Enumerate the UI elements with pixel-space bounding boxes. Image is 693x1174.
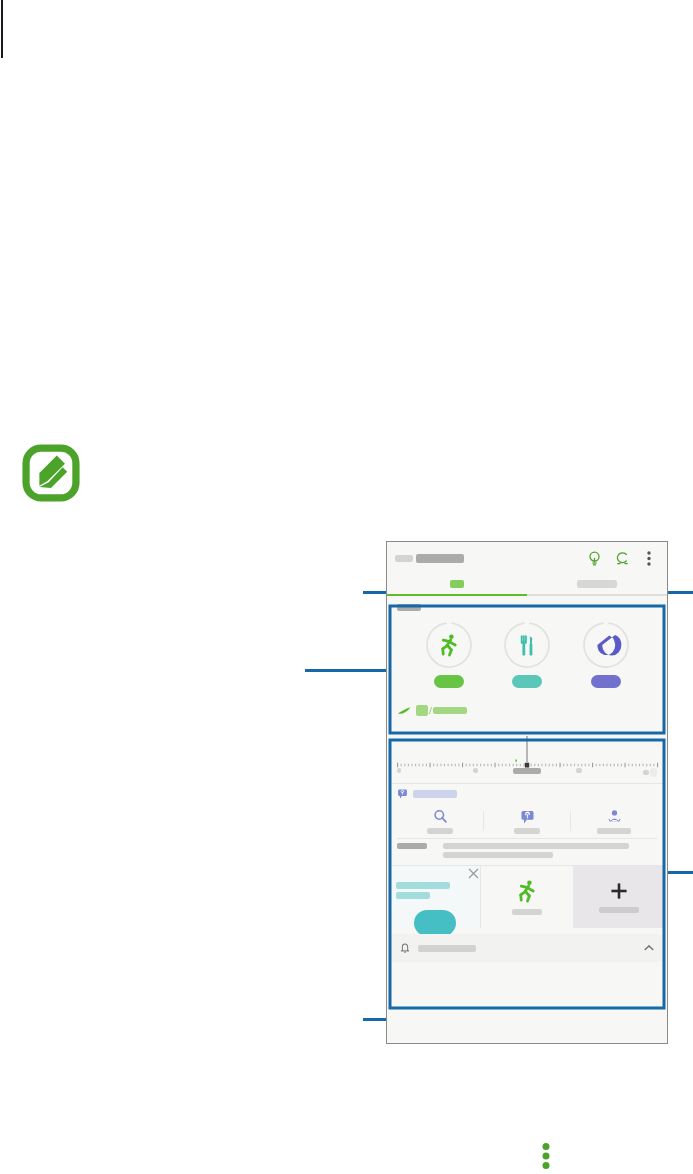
button[interactable] <box>387 574 527 594</box>
button[interactable]: More options <box>639 548 659 568</box>
staticText: / <box>429 705 432 716</box>
button[interactable] <box>571 804 657 838</box>
button[interactable] <box>481 866 573 928</box>
button[interactable]: Dismiss <box>466 866 480 880</box>
button[interactable] <box>397 804 483 838</box>
button[interactable] <box>391 934 663 962</box>
button[interactable]: Dismiss <box>389 866 480 928</box>
button[interactable]: / <box>389 700 665 783</box>
button[interactable] <box>422 618 476 690</box>
button[interactable] <box>500 618 554 690</box>
button[interactable] <box>527 574 667 594</box>
button[interactable] <box>484 804 570 838</box>
button[interactable] <box>579 618 633 690</box>
button[interactable] <box>397 788 457 799</box>
button[interactable] <box>573 866 665 928</box>
button[interactable]: Profile <box>611 547 633 569</box>
button[interactable]: Tips <box>583 547 605 569</box>
